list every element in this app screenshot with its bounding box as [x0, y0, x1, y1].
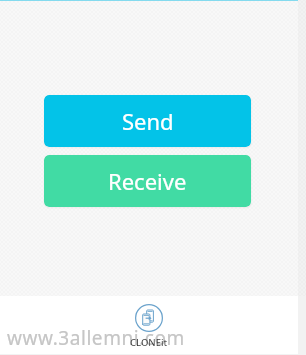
button[interactable]: Receive	[44, 155, 251, 207]
staticText: Receive	[108, 166, 187, 196]
staticText: www.3allemni.com	[7, 325, 185, 351]
staticText: Send	[122, 106, 174, 136]
button[interactable]: Send	[44, 95, 251, 147]
staticText: CLONEit	[130, 336, 168, 349]
button[interactable]: CLONEit	[135, 304, 163, 332]
